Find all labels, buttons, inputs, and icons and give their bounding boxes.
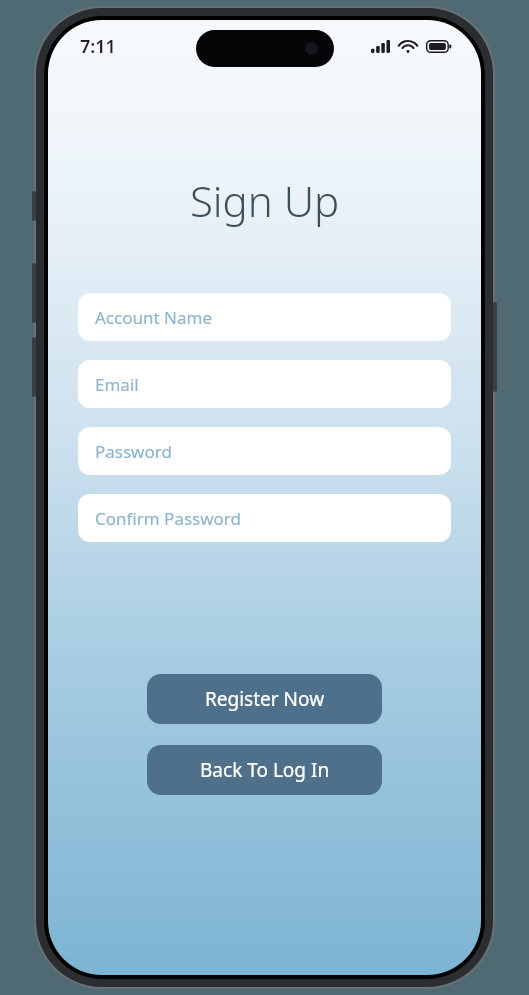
button[interactable]: Confirm Password bbox=[78, 494, 451, 542]
button[interactable]: Email bbox=[78, 360, 451, 408]
staticText: Account Name bbox=[95, 306, 212, 329]
staticText: 7:11 bbox=[80, 34, 116, 59]
other: Battery bbox=[426, 40, 452, 53]
staticText: Email bbox=[95, 373, 139, 396]
button[interactable]: Account Name bbox=[78, 293, 451, 341]
staticText: Register Now bbox=[205, 686, 325, 712]
button[interactable]: Register Now bbox=[147, 674, 382, 724]
staticText: Confirm Password bbox=[95, 507, 241, 530]
staticText: Password bbox=[95, 440, 172, 463]
staticText: Sign Up bbox=[48, 172, 481, 229]
button[interactable]: Back To Log In bbox=[147, 745, 382, 795]
button[interactable]: Password bbox=[78, 427, 451, 475]
other: Wi-Fi bbox=[399, 40, 417, 53]
other: Cellular signal bbox=[371, 40, 390, 53]
staticText: Back To Log In bbox=[200, 757, 330, 783]
